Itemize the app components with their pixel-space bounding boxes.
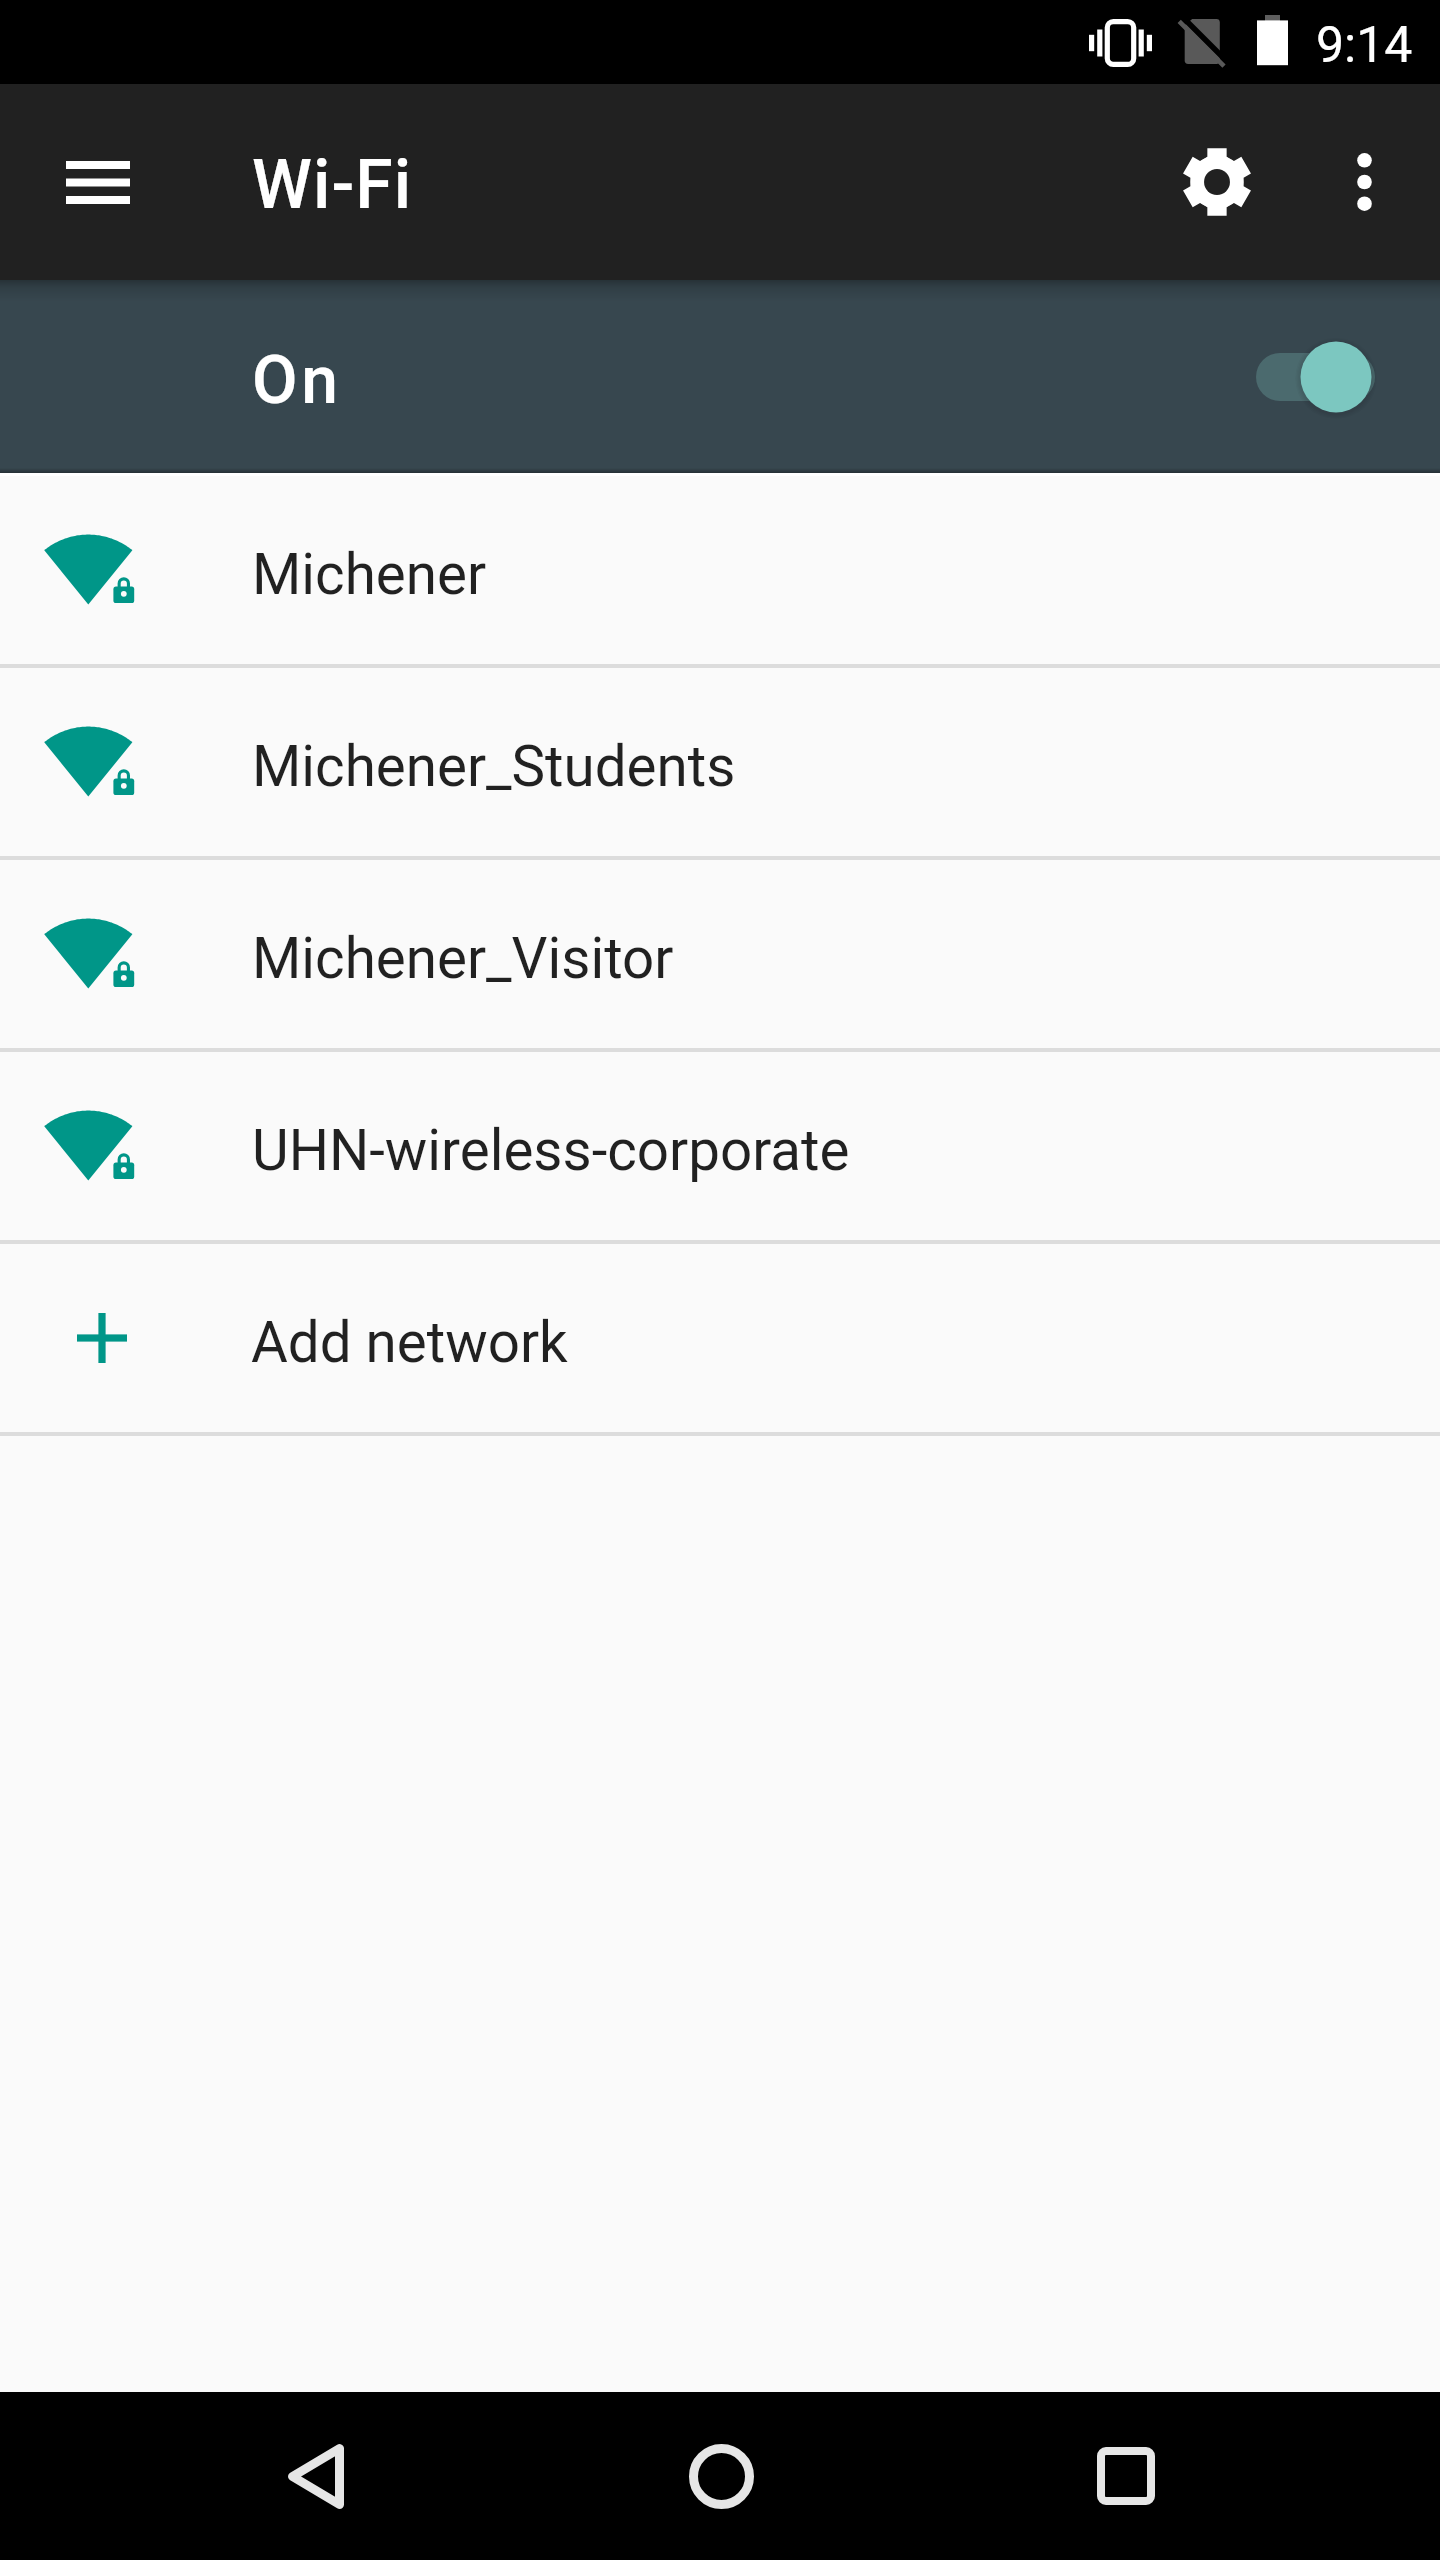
button[interactable]: UHN-wireless-corporate [0, 1052, 1440, 1240]
button[interactable]: On [0, 280, 1440, 473]
button[interactable]: Michener [0, 476, 1440, 664]
staticText: Add network [251, 1310, 568, 1376]
staticText: UHN-wireless-corporate [252, 1118, 850, 1184]
button[interactable]: Settings [1143, 108, 1291, 256]
button[interactable]: Open navigation drawer [24, 108, 172, 256]
button[interactable]: Home [637, 2392, 805, 2560]
staticText: Wi-Fi [252, 145, 413, 225]
staticText: Michener_Visitor [252, 926, 674, 992]
button[interactable]: Michener_Visitor [0, 860, 1440, 1048]
button[interactable]: Back [232, 2392, 400, 2560]
button[interactable]: Add network [0, 1244, 1440, 1432]
button[interactable]: More options [1290, 108, 1438, 256]
staticText: Michener_Students [252, 734, 736, 800]
staticText: Michener [252, 542, 487, 608]
staticText: 9:14 [1316, 16, 1413, 75]
staticText: On [252, 342, 342, 419]
button[interactable]: Michener_Students [0, 668, 1440, 856]
button[interactable]: Recent apps [1042, 2392, 1210, 2560]
